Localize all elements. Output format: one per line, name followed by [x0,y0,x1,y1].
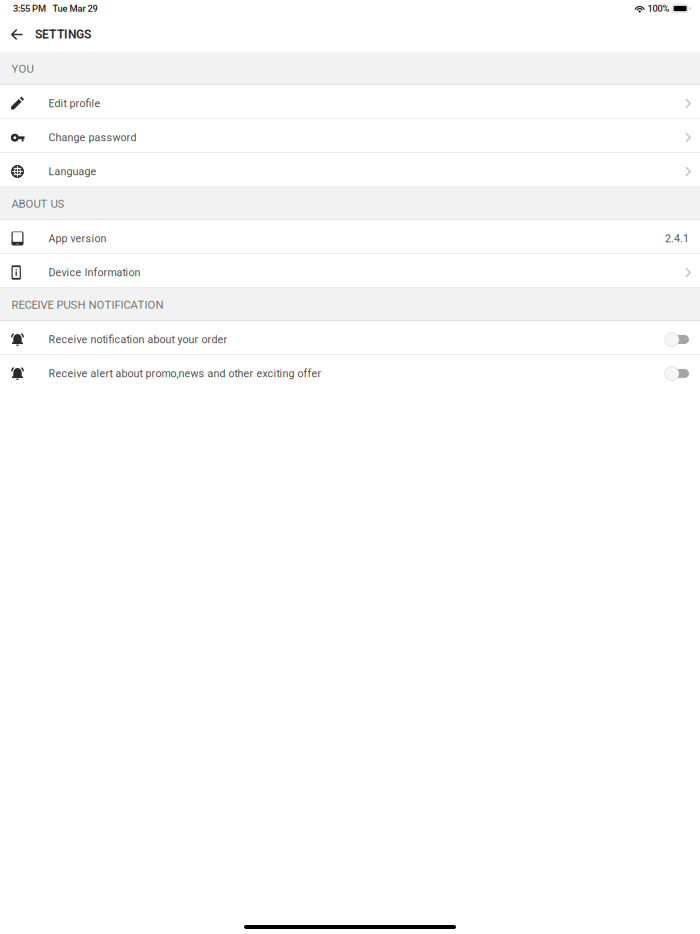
button[interactable]: Receive alert about promo,news and other… [0,355,700,389]
staticText: 100% [648,3,670,14]
button[interactable]: Receive notification about your order [0,321,700,355]
button[interactable]: Language [0,153,700,187]
staticText: Change password [48,131,136,144]
staticText: SETTINGS [35,27,91,42]
staticText: Language [48,165,96,178]
button[interactable]: App version [0,220,700,254]
button[interactable]: Back [5,22,29,46]
staticText: Edit profile [48,97,100,110]
staticText: App version [48,232,106,245]
button[interactable]: Device Information [0,254,700,288]
button[interactable]: Change password [0,119,700,153]
staticText: Receive alert about promo,news and other… [48,367,321,380]
staticText: RECEIVE PUSH NOTIFICATION [11,298,163,312]
staticText: ABOUT US [11,197,64,211]
staticText: Tue Mar 29 [52,3,97,14]
staticText: 3:55 PM [13,3,46,14]
button[interactable]: Edit profile [0,85,700,119]
staticText: Device Information [48,266,140,279]
staticText: YOU [11,62,33,76]
staticText: Receive notification about your order [48,333,227,346]
staticText: 2.4.1 [665,232,689,245]
